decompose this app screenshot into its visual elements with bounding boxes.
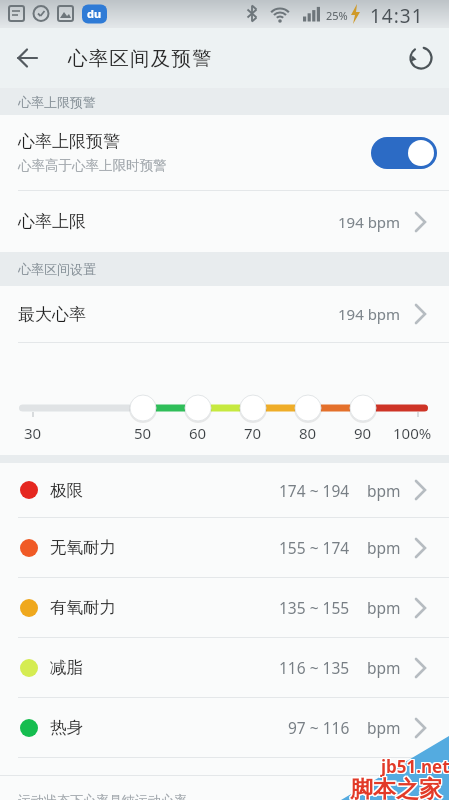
staticText: bpm xyxy=(367,537,401,558)
staticText: 97 ~ 116 xyxy=(288,717,350,738)
staticText: jb51.net xyxy=(382,754,449,777)
staticText: 135 ~ 155 xyxy=(279,597,350,618)
staticText: 无氧耐力 xyxy=(50,537,116,558)
button[interactable] xyxy=(0,30,56,86)
staticText: 194 bpm xyxy=(338,304,401,324)
button[interactable]: 有氧耐力 xyxy=(0,578,449,637)
staticText: 减脂 xyxy=(50,657,83,678)
staticText: 心率高于心率上限时预警 xyxy=(18,157,167,174)
button[interactable]: 无氧耐力 xyxy=(0,518,449,577)
staticText: jb51.net xyxy=(380,754,449,777)
button[interactable]: 减脂 xyxy=(0,638,449,697)
staticText: 50 xyxy=(134,423,152,443)
staticText: 心率上限 xyxy=(18,211,86,232)
staticText: 60 xyxy=(189,423,207,443)
staticText: 最大心率 xyxy=(18,304,86,325)
button[interactable] xyxy=(393,30,449,86)
staticText: 100% xyxy=(393,423,432,443)
staticText: 脚本之家 xyxy=(350,774,442,800)
staticText: 174 ~ 194 xyxy=(279,480,350,501)
staticText: jb51.net xyxy=(381,755,449,778)
staticText: 脚本之家 xyxy=(350,775,442,800)
staticText: 80 xyxy=(299,423,317,443)
staticText: du xyxy=(87,6,102,21)
staticText: 90 xyxy=(354,423,372,443)
staticText: jb51.net xyxy=(380,756,449,779)
button[interactable]: 热身 xyxy=(0,698,449,757)
staticText: 有氧耐力 xyxy=(50,597,116,618)
staticText: 脚本之家 xyxy=(351,776,443,800)
staticText: 脚本之家 xyxy=(351,774,443,800)
button[interactable]: 心率上限预警 xyxy=(0,115,449,190)
staticText: 116 ~ 135 xyxy=(279,657,350,678)
staticText: bpm xyxy=(367,597,401,618)
staticText: 心率区间及预警 xyxy=(68,46,213,71)
staticText: 脚本之家 xyxy=(350,776,442,800)
staticText: bpm xyxy=(367,480,401,501)
staticText: 脚本之家 xyxy=(349,775,441,800)
staticText: jb51.net xyxy=(382,756,449,779)
staticText: 194 bpm xyxy=(338,212,401,232)
staticText: jb51.net xyxy=(382,755,449,778)
button[interactable]: 最大心率 xyxy=(0,286,449,342)
staticText: 脚本之家 xyxy=(349,776,441,800)
staticText: 脚本之家 xyxy=(351,775,443,800)
staticText: bpm xyxy=(367,717,401,738)
staticText: 脚本之家 xyxy=(349,774,441,800)
staticText: 70 xyxy=(244,423,262,443)
staticText: jb51.net xyxy=(381,754,449,777)
staticText: 155 ~ 174 xyxy=(279,537,350,558)
button[interactable] xyxy=(371,137,437,169)
staticText: 心率上限预警 xyxy=(18,94,96,110)
staticText: bpm xyxy=(367,657,401,678)
staticText: jb51.net xyxy=(380,755,449,778)
staticText: 热身 xyxy=(50,717,83,738)
staticText: 心率上限预警 xyxy=(18,131,120,152)
staticText: jb51.net xyxy=(381,756,449,779)
staticText: 心率区间设置 xyxy=(18,261,96,277)
button[interactable]: 心率上限 xyxy=(0,191,449,252)
staticText: 极限 xyxy=(50,480,83,501)
staticText: 25% xyxy=(326,8,348,23)
staticText: 30 xyxy=(24,423,42,443)
staticText: 14:31 xyxy=(370,3,424,29)
staticText: 运动状态下心率是纯运动心率 xyxy=(18,792,187,800)
button[interactable]: 极限 xyxy=(0,463,449,517)
